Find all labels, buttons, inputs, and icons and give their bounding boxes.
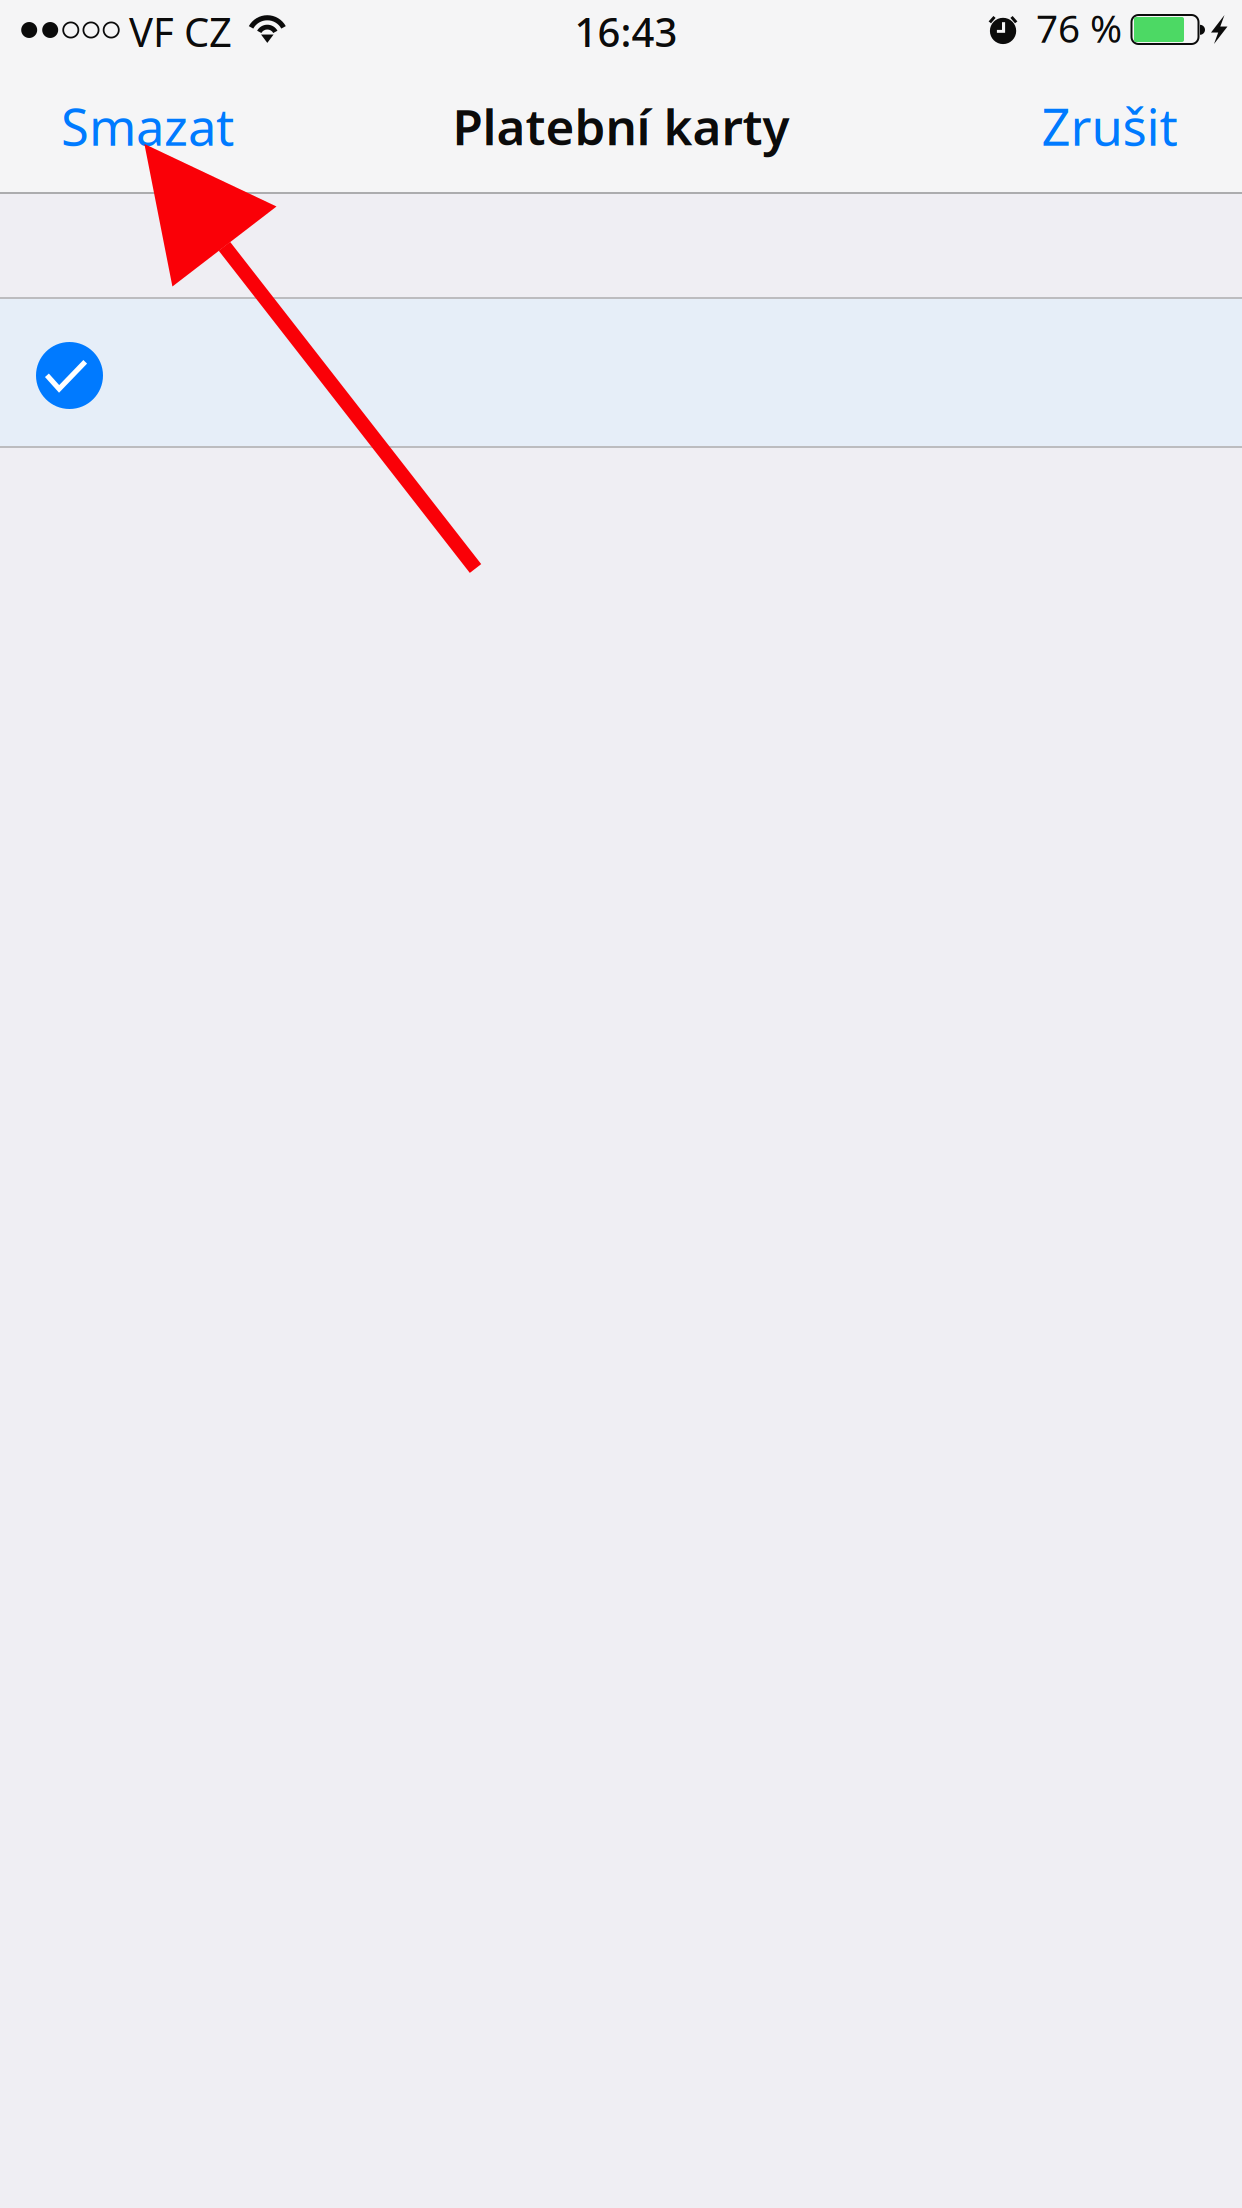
staticText: Smazat [61,92,234,160]
button[interactable]: Platební karta, vybráno [0,299,1242,446]
staticText: Zrušit [1041,92,1177,160]
staticText: 16:43 [574,5,677,58]
staticText: Platební karty [452,93,789,159]
staticText: 76 % [1036,2,1122,53]
staticText: VF CZ [129,5,232,58]
button[interactable]: Zrušit [1031,77,1188,175]
button[interactable]: Smazat [54,77,241,175]
